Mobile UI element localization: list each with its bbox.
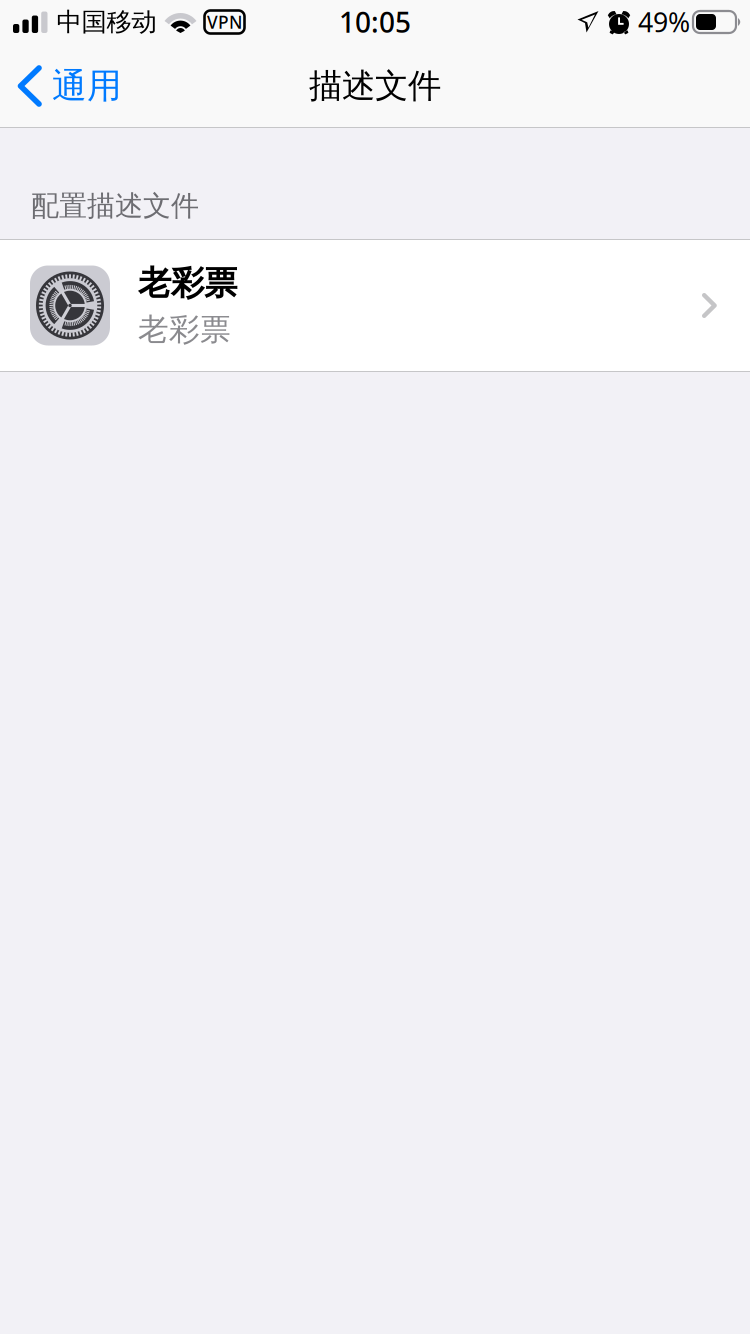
staticText: 配置描述文件 [31, 189, 199, 223]
staticText: 老彩票 [138, 263, 237, 304]
staticText: 老彩票 [138, 311, 231, 348]
staticText: 通用 [52, 65, 122, 107]
staticText: 49% [638, 4, 690, 40]
staticText: 10:05 [339, 3, 411, 41]
button[interactable]: 老彩票 [0, 240, 750, 371]
staticText: 中国移动 [56, 6, 156, 37]
staticText: 描述文件 [309, 65, 441, 106]
staticText: VPN [207, 10, 242, 33]
button[interactable]: 通用 [0, 55, 136, 117]
